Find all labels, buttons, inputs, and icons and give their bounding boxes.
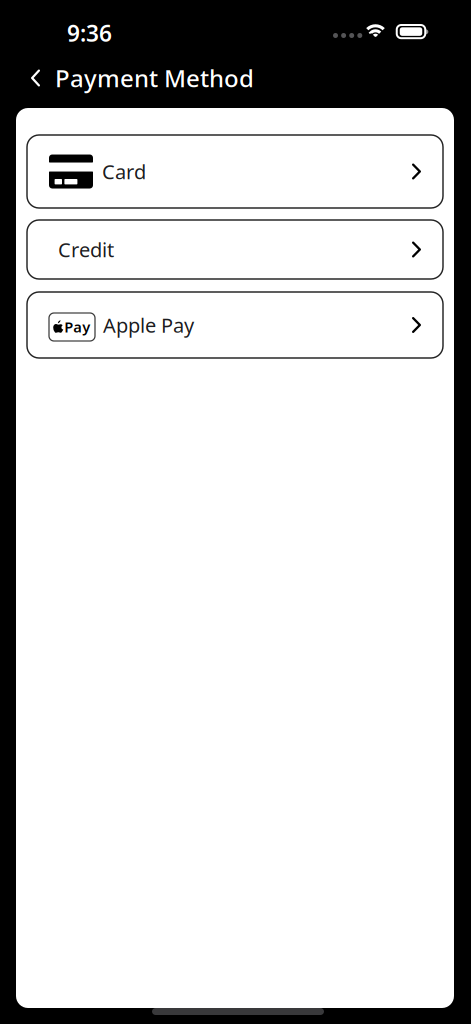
staticText: Pay bbox=[64, 317, 90, 336]
staticText: 9:36 bbox=[67, 18, 112, 48]
staticText: Payment Method bbox=[55, 62, 254, 94]
button[interactable]: Credit bbox=[27, 220, 443, 279]
staticText: Credit bbox=[58, 236, 114, 263]
staticText: Card bbox=[102, 158, 146, 185]
button[interactable]: Card bbox=[27, 135, 443, 208]
button[interactable]: Apple Pay bbox=[27, 292, 443, 358]
staticText: Apple Pay bbox=[103, 312, 194, 338]
button[interactable]: Back bbox=[0, 57, 55, 98]
